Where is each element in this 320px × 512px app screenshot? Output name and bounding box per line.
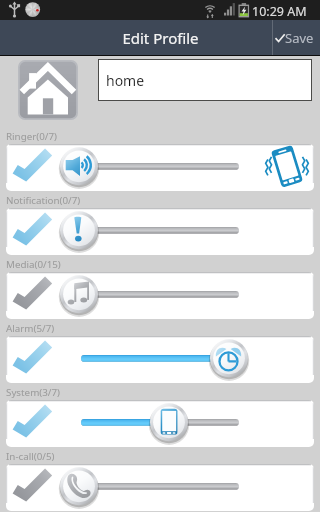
staticText: Media(0/15) (6, 258, 61, 271)
button[interactable] (6, 464, 314, 511)
button[interactable] (6, 144, 314, 191)
staticText: In-call(0/5) (6, 450, 55, 463)
staticText: home (106, 71, 145, 90)
staticText: Save (285, 29, 314, 47)
staticText: System(3/7) (6, 386, 61, 399)
staticText: Alarm(5/7) (6, 322, 55, 335)
staticText: 10:29 AM (252, 3, 307, 20)
staticText: Notification(0/7) (6, 194, 81, 207)
button[interactable] (6, 272, 314, 319)
button[interactable] (6, 336, 314, 383)
button[interactable] (6, 400, 314, 447)
staticText: Edit Profile (122, 28, 199, 48)
button[interactable]: Save (273, 20, 320, 56)
button[interactable]: Change profile icon (18, 60, 78, 120)
button[interactable] (6, 208, 314, 255)
button[interactable]: home (99, 60, 311, 100)
staticText: Ringer(0/7) (6, 130, 58, 143)
